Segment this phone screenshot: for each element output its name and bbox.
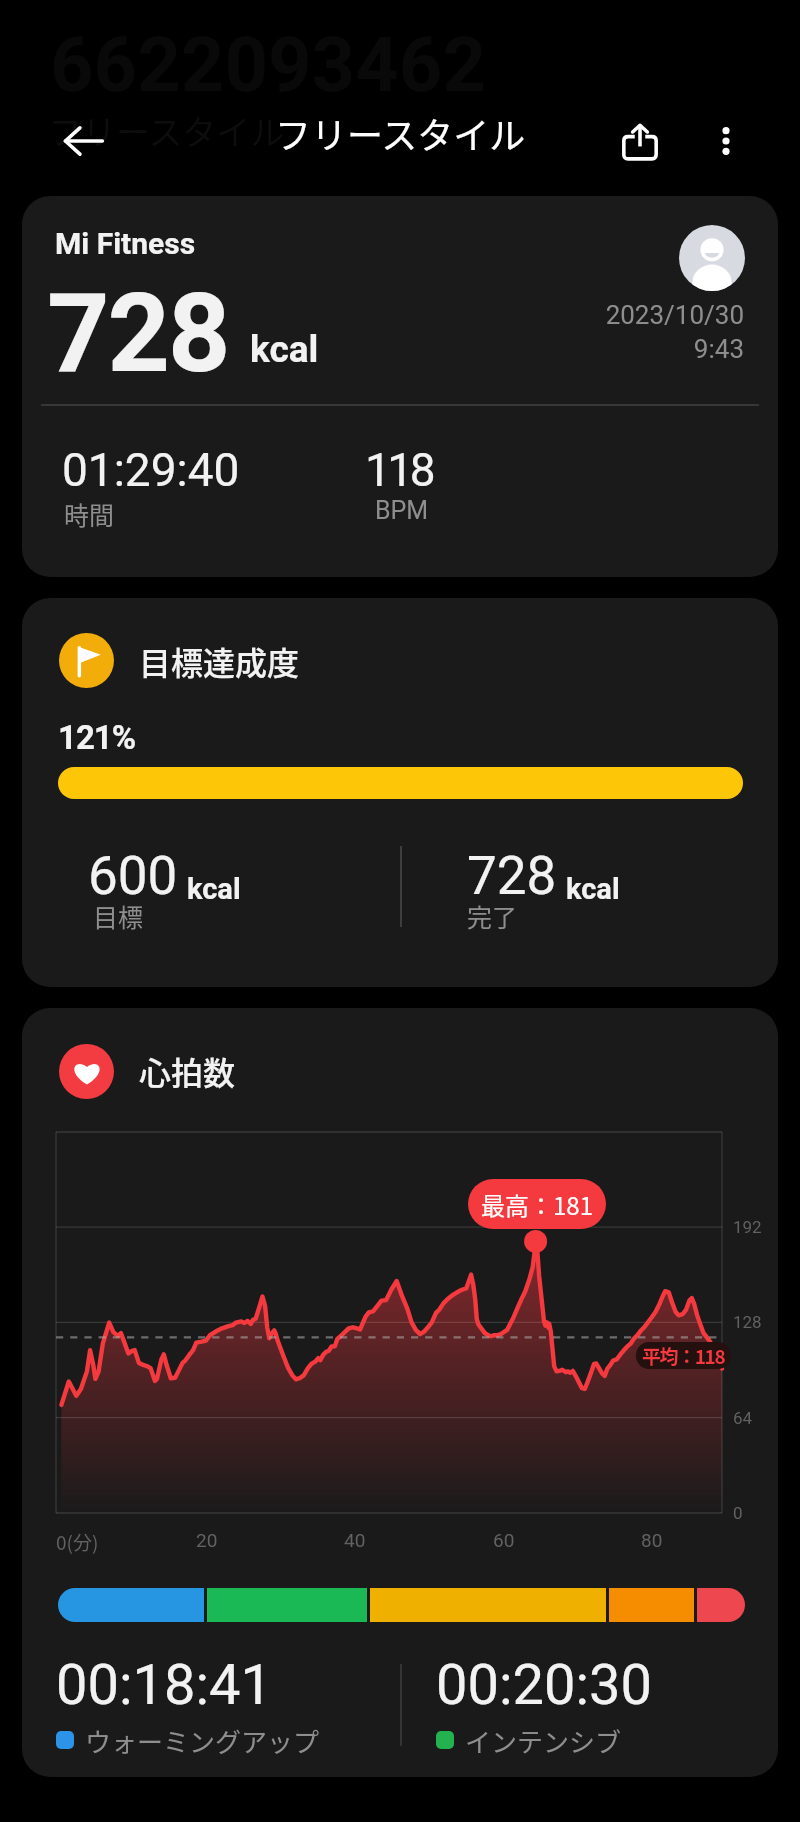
staticText: BPM — [375, 496, 429, 525]
staticText: 80 — [641, 1529, 663, 1551]
staticText: 728 — [467, 845, 557, 907]
staticText: 2023/10/30 — [444, 300, 744, 330]
staticText: kcal — [187, 872, 241, 906]
staticText: 00:18:41 — [56, 1652, 272, 1718]
staticText: 目標達成度 — [139, 638, 300, 684]
button[interactable]: Mi Fitness — [22, 196, 778, 577]
button[interactable]: 目標達成度 — [22, 598, 778, 987]
staticText: 00:20:30 — [436, 1652, 652, 1718]
staticText: フリースタイル — [275, 107, 526, 159]
staticText: 01:29:40 — [62, 443, 240, 497]
staticText: 64 — [733, 1408, 753, 1428]
staticText: 118 — [365, 443, 433, 497]
staticText: 600 — [88, 845, 178, 907]
staticText: ウォーミングアップ — [85, 1722, 320, 1760]
button[interactable]: More options — [685, 100, 767, 182]
staticText: 平均：118 — [642, 1342, 725, 1369]
staticText: 0 — [733, 1503, 743, 1523]
staticText: フリースタイル — [48, 106, 285, 155]
button[interactable]: Back — [42, 100, 124, 182]
button[interactable]: Share — [599, 100, 681, 182]
staticText: 728 — [47, 270, 229, 398]
staticText: 40 — [344, 1529, 366, 1551]
staticText: 心拍数 — [139, 1048, 236, 1094]
staticText: 最高：181 — [481, 1187, 593, 1222]
staticText: 6622093462 — [50, 20, 487, 109]
staticText: 192 — [733, 1217, 762, 1237]
staticText: 9:43 — [444, 334, 744, 364]
button[interactable]: 心拍数 — [22, 1008, 778, 1777]
staticText: kcal — [250, 328, 319, 371]
staticText: インテンシブ — [465, 1722, 622, 1760]
staticText: 121% — [58, 718, 136, 757]
staticText: 0(分) — [56, 1528, 99, 1556]
staticText: 60 — [493, 1529, 515, 1551]
staticText: 128 — [733, 1312, 762, 1332]
staticText: Mi Fitness — [55, 226, 196, 261]
staticText: 完了 — [467, 898, 518, 934]
staticText: 20 — [196, 1529, 218, 1551]
staticText: 時間 — [64, 496, 115, 532]
button[interactable]: Profile — [679, 225, 745, 291]
staticText: kcal — [566, 872, 620, 906]
staticText: 目標 — [93, 898, 144, 934]
